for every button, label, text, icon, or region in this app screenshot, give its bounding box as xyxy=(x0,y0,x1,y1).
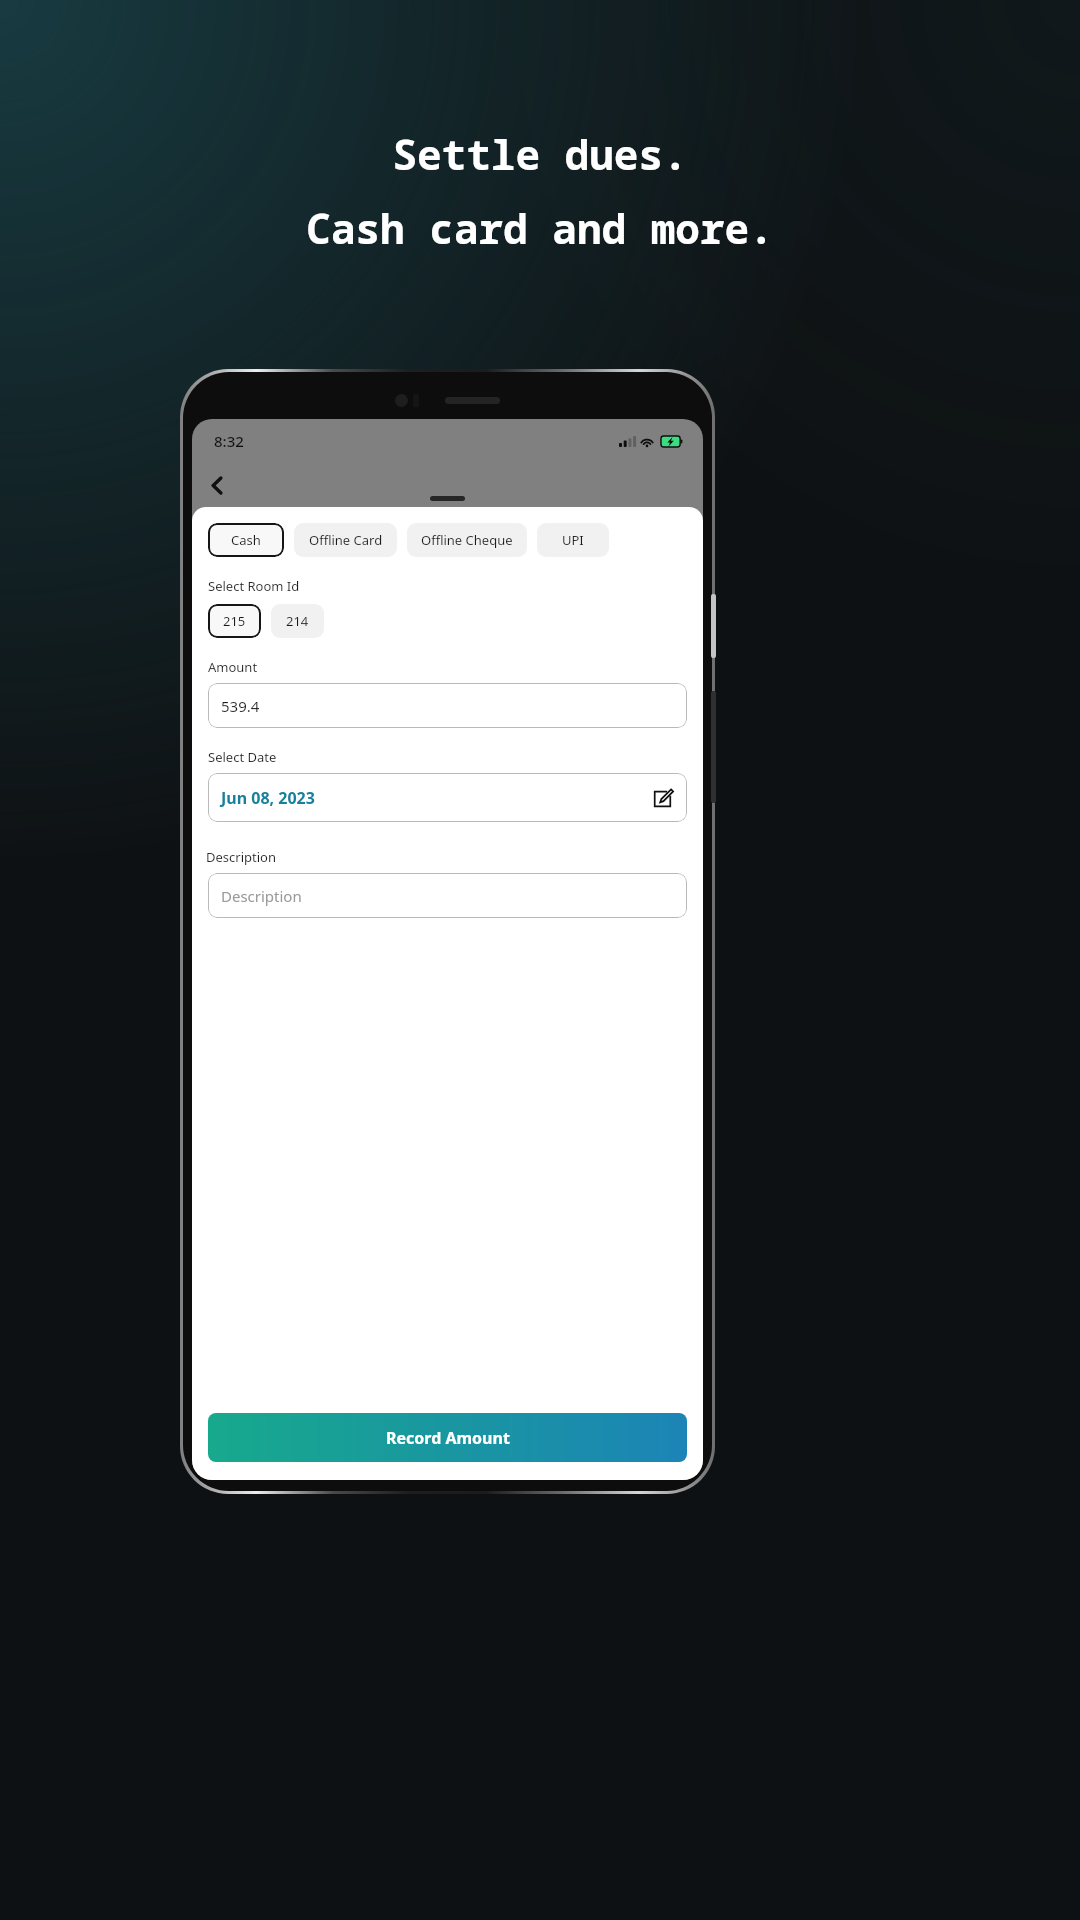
staticText: 214 xyxy=(286,612,309,630)
button[interactable]: Description xyxy=(208,873,687,918)
button[interactable]: 215 xyxy=(208,604,261,638)
staticText: Cash card and more. xyxy=(0,200,1080,256)
staticText: Jun 08, 2023 xyxy=(221,787,315,809)
staticText: Settle dues. xyxy=(0,126,1080,182)
button[interactable]: Cash xyxy=(208,523,284,557)
staticText: 8:32 xyxy=(214,431,244,451)
button[interactable]: UPI xyxy=(537,523,609,557)
button[interactable]: 539.4 xyxy=(208,683,687,728)
button[interactable]: Jun 08, 2023 xyxy=(208,773,687,822)
staticText: Record Amount xyxy=(386,1427,510,1449)
staticText: Offline Card xyxy=(309,531,383,549)
button[interactable]: Back xyxy=(200,468,234,502)
staticText: Amount xyxy=(208,658,258,676)
button[interactable]: Offline Cheque xyxy=(407,523,527,557)
staticText: Select Date xyxy=(208,748,277,766)
staticText: Offline Cheque xyxy=(421,531,513,549)
staticText: Cash xyxy=(231,531,261,549)
button[interactable]: Offline Card xyxy=(294,523,397,557)
staticText: 215 xyxy=(223,612,246,630)
staticText: UPI xyxy=(562,531,584,549)
staticText: Select Room Id xyxy=(208,577,300,595)
button[interactable]: 214 xyxy=(271,604,324,638)
staticText: Description xyxy=(206,848,276,866)
button[interactable]: Record Amount xyxy=(208,1413,687,1462)
staticText: 539.4 xyxy=(221,696,260,716)
staticText: Description xyxy=(221,886,302,906)
other: Edit date xyxy=(650,786,674,810)
